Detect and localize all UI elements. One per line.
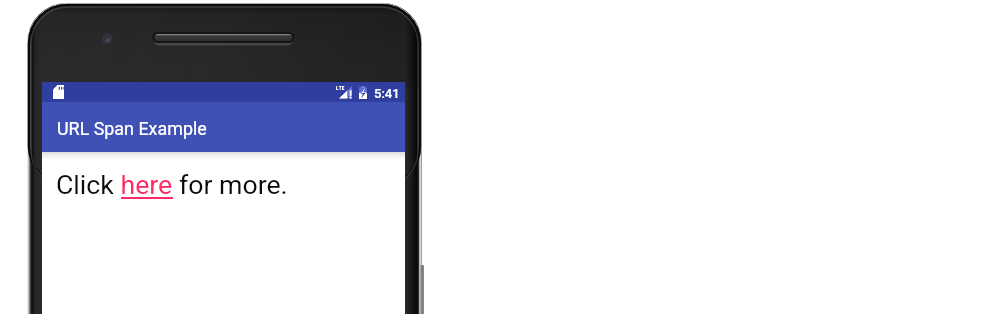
button[interactable]: URL Span Example bbox=[42, 102, 405, 152]
staticText: URL Span Example bbox=[57, 118, 207, 139]
button[interactable]: Click here for more. bbox=[56, 169, 288, 200]
staticText: 5:41 bbox=[374, 86, 400, 101]
other: Power button bbox=[420, 265, 424, 314]
